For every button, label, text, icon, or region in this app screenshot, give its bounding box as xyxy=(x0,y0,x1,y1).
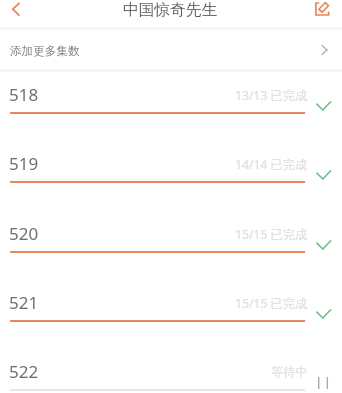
button[interactable]: Pause download xyxy=(310,370,338,393)
staticText: 521 xyxy=(9,291,39,314)
staticText: 添加更多集数 xyxy=(10,44,80,59)
staticText: 等待中 xyxy=(271,364,308,379)
button[interactable]: Completed xyxy=(310,94,338,118)
button[interactable]: 519 xyxy=(0,145,342,214)
button[interactable]: 添加更多集数 xyxy=(0,29,342,70)
button[interactable]: 522 xyxy=(0,353,342,393)
staticText: 518 xyxy=(9,83,39,106)
button[interactable]: Completed xyxy=(310,163,338,187)
staticText: 15/15 已完成 xyxy=(235,226,308,243)
button[interactable]: Back xyxy=(3,0,29,22)
button[interactable]: 518 xyxy=(0,76,342,145)
button[interactable]: 521 xyxy=(0,284,342,353)
staticText: 519 xyxy=(9,152,39,175)
button[interactable]: Completed xyxy=(310,233,338,257)
staticText: 14/14 已完成 xyxy=(235,156,308,173)
staticText: 15/15 已完成 xyxy=(235,295,308,312)
button[interactable]: Completed xyxy=(310,302,338,326)
staticText: 13/13 已完成 xyxy=(235,87,308,104)
staticText: 中国惊奇先生 xyxy=(123,0,218,20)
button[interactable]: 520 xyxy=(0,215,342,284)
staticText: 520 xyxy=(9,222,39,245)
staticText: 522 xyxy=(9,360,39,383)
button[interactable]: Edit xyxy=(310,0,336,23)
